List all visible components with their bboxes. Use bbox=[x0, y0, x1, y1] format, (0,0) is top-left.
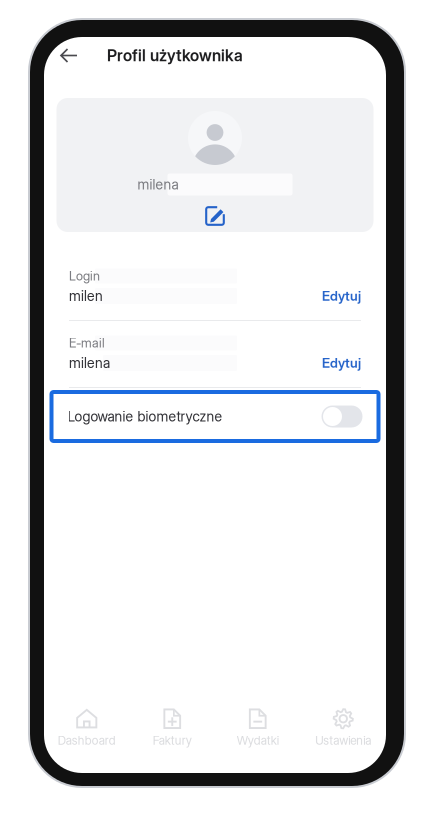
staticText: Profil użytkownika bbox=[107, 46, 243, 65]
button[interactable]: Dashboard bbox=[44, 704, 129, 752]
button[interactable]: Wydatki bbox=[215, 704, 300, 752]
staticText: Edytuj bbox=[322, 288, 361, 304]
button[interactable]: Faktury bbox=[129, 704, 215, 752]
button[interactable]: Back bbox=[49, 35, 89, 75]
button[interactable]: Logowanie biometryczne bbox=[51, 392, 378, 441]
staticText: Dashboard bbox=[58, 733, 116, 748]
staticText: E-mail bbox=[69, 335, 105, 351]
button[interactable]: Edytuj bbox=[308, 283, 361, 309]
staticText: Ustawienia bbox=[315, 733, 371, 748]
staticText: Logowanie biometryczne bbox=[67, 408, 222, 425]
staticText: milen bbox=[69, 287, 103, 304]
staticText: Wydatki bbox=[237, 733, 279, 748]
button[interactable]: Edit profile bbox=[204, 205, 226, 227]
button[interactable]: Ustawienia bbox=[300, 704, 386, 752]
button[interactable]: Edytuj bbox=[308, 350, 361, 376]
staticText: Login bbox=[69, 268, 100, 284]
staticText: Faktury bbox=[153, 733, 192, 748]
staticText: milena bbox=[137, 176, 178, 193]
staticText: Edytuj bbox=[322, 355, 361, 371]
staticText: milena bbox=[69, 354, 110, 371]
